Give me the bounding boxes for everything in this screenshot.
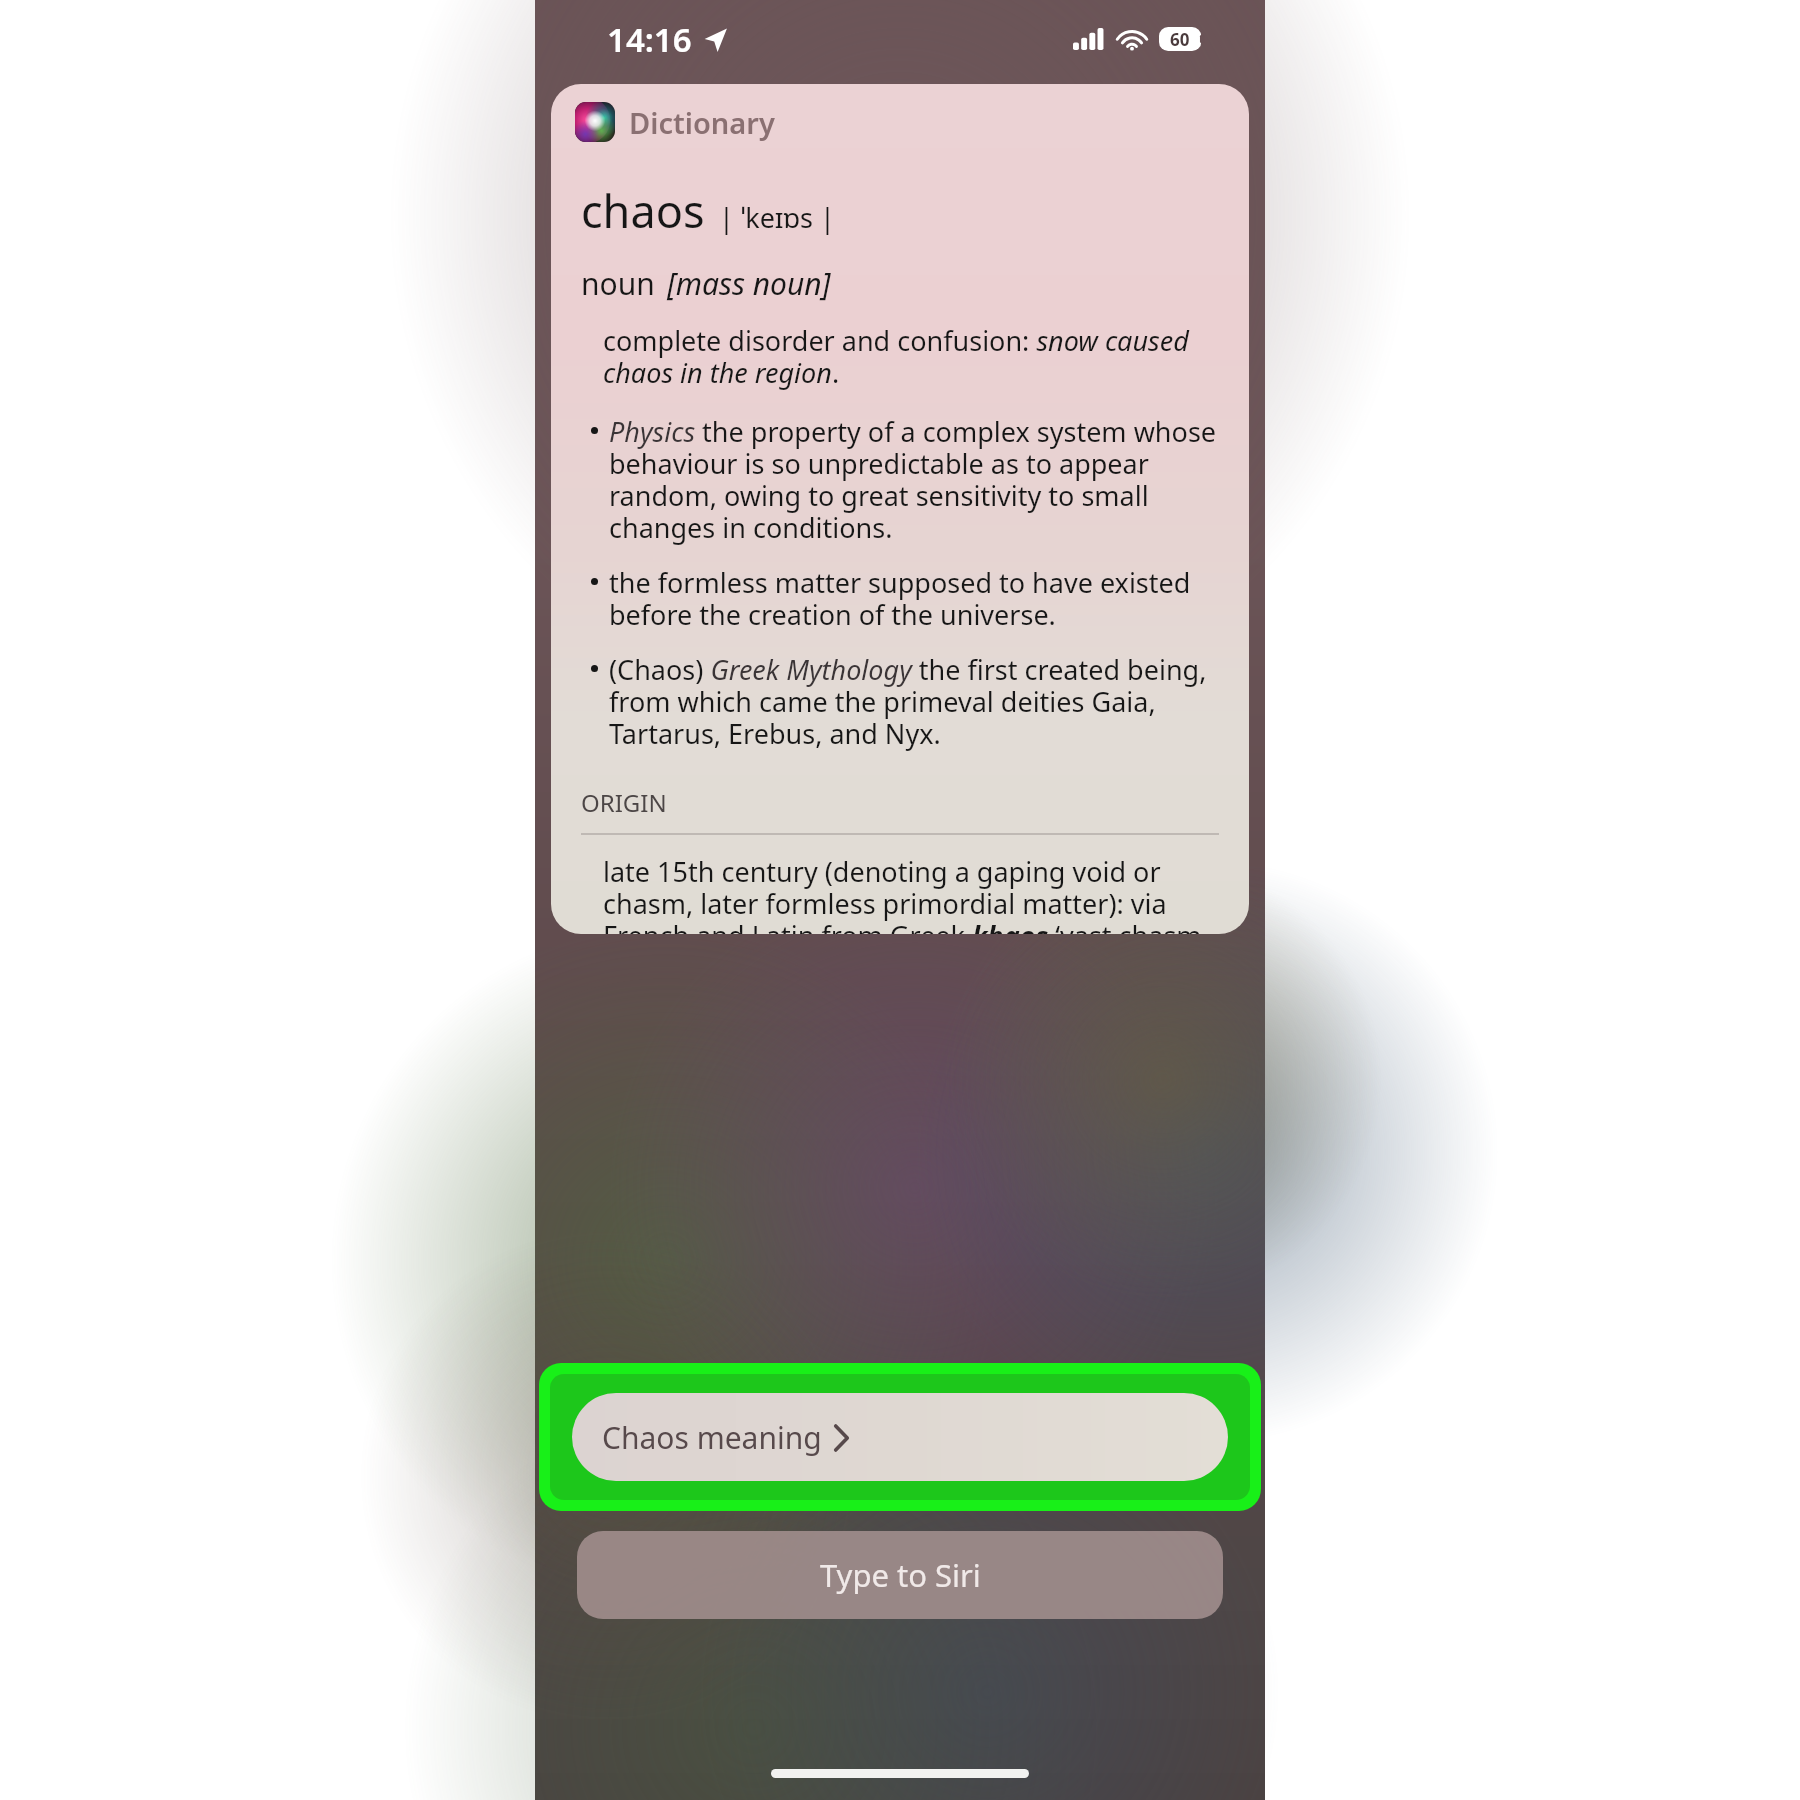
button[interactable]: Chaos meaning [572, 1393, 1228, 1481]
staticText: complete disorder and confusion: snow ca… [603, 322, 1221, 391]
staticText: noun [581, 263, 655, 304]
staticText: late 15th century (denoting a gaping voi… [603, 853, 1221, 934]
staticText: | ˈkeɪɒs | [719, 199, 835, 236]
staticText: Chaos meaning [602, 1417, 822, 1458]
staticText: Type to Siri [820, 1554, 981, 1596]
staticText: (Chaos) Greek Mythology the first create… [609, 651, 1221, 752]
staticText: the formless matter supposed to have exi… [609, 564, 1221, 633]
staticText: [mass noun] [667, 263, 831, 304]
staticText: 60 [1170, 28, 1190, 51]
staticText: ORIGIN [581, 786, 667, 819]
staticText: chaos [581, 180, 705, 241]
button[interactable]: Type to Siri [577, 1531, 1223, 1619]
staticText: 14:16 [607, 17, 692, 62]
staticText: Physics the property of a complex system… [609, 413, 1221, 546]
staticText: Dictionary [629, 103, 775, 142]
